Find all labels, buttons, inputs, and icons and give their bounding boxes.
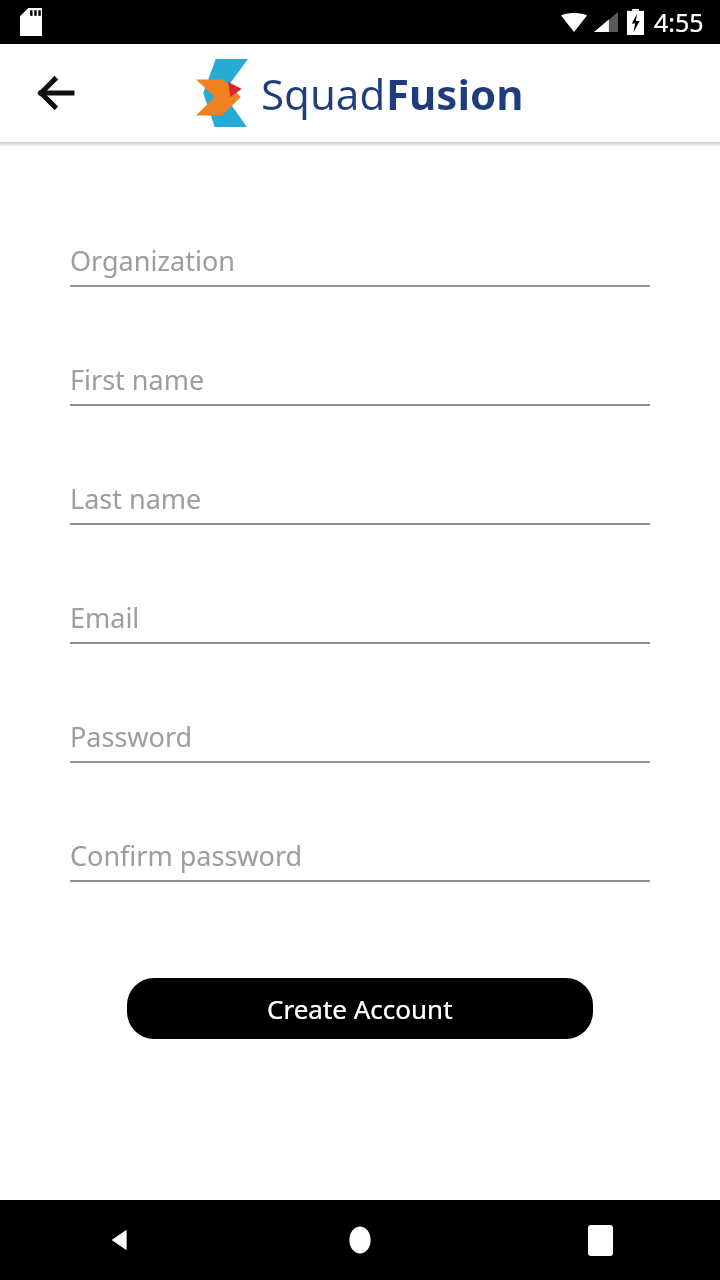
staticText: First name [70,361,205,398]
staticText: Confirm password [70,837,303,874]
staticText: Password [70,718,193,755]
staticText: Email [70,599,140,636]
button[interactable]: Last name [0,471,720,590]
button[interactable]: Home [240,1200,480,1280]
staticText: Squad [261,65,386,122]
button[interactable]: Create Account [127,978,593,1039]
button[interactable]: Confirm password [0,828,720,947]
button[interactable]: First name [0,352,720,471]
button[interactable]: Email [0,590,720,709]
button[interactable]: Back [26,63,86,123]
staticText: Organization [70,242,235,279]
button[interactable]: Organization [0,233,720,352]
button[interactable]: Back [0,1200,240,1280]
button[interactable]: Recent apps [480,1200,720,1280]
button[interactable]: Password [0,709,720,828]
staticText: Create Account [267,991,453,1026]
staticText: 4:55 [654,5,704,39]
staticText: Fusion [386,65,524,122]
staticText: Last name [70,480,202,517]
